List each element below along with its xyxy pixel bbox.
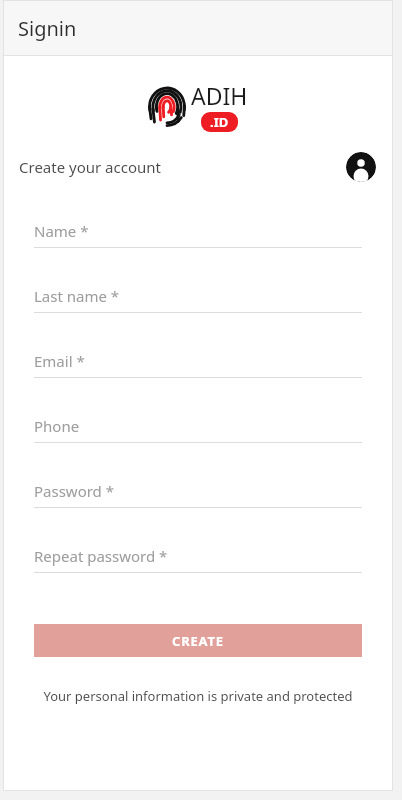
- button[interactable]: Account: [346, 152, 376, 182]
- button[interactable]: Phone: [34, 409, 362, 474]
- button[interactable]: Last name *: [34, 279, 362, 344]
- staticText: Signin: [18, 15, 77, 42]
- button[interactable]: Password *: [34, 474, 362, 539]
- button[interactable]: Email *: [34, 344, 362, 409]
- staticText: Phone: [34, 416, 80, 436]
- button[interactable]: CREATE: [34, 624, 362, 657]
- staticText: CREATE: [172, 632, 224, 650]
- staticText: Create your account: [19, 157, 161, 177]
- staticText: Repeat password *: [34, 546, 168, 566]
- staticText: Password *: [34, 481, 115, 501]
- staticText: Name *: [34, 221, 89, 241]
- button[interactable]: Name *: [34, 214, 362, 279]
- button[interactable]: Repeat password *: [34, 539, 362, 604]
- staticText: ADIH: [191, 80, 248, 111]
- staticText: Your personal information is private and…: [34, 687, 362, 705]
- staticText: Last name *: [34, 286, 120, 306]
- staticText: .ID: [210, 113, 229, 131]
- staticText: Email *: [34, 351, 85, 371]
